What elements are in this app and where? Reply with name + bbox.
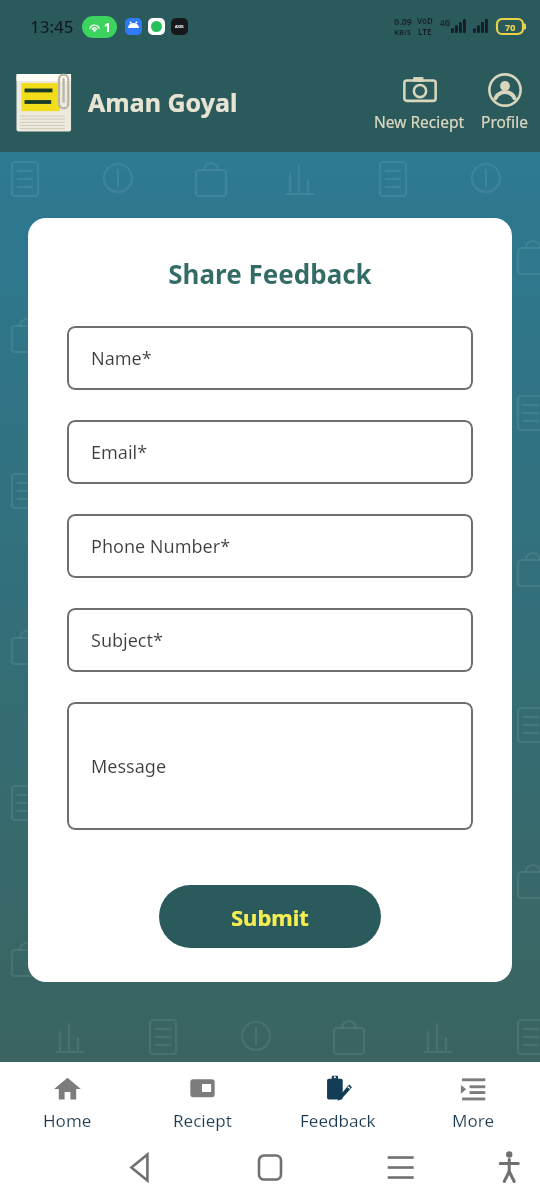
button[interactable]: Reciept [135,1062,270,1144]
staticText: 13:45 [30,15,74,38]
button[interactable]: Name* [67,326,473,390]
staticText: Feedback [300,1109,376,1132]
button[interactable]: More [405,1062,540,1144]
staticText: 1 [104,19,111,35]
staticText: Profile [481,111,528,132]
staticText: Email* [91,440,148,465]
staticText: Message [91,754,167,779]
staticText: Home [43,1109,92,1132]
button[interactable]: Email* [67,420,473,484]
button[interactable]: Feedback [270,1062,405,1144]
staticText: 70 [505,21,516,33]
staticText: Share Feedback [168,256,372,291]
staticText: 0.09 [394,15,412,27]
button[interactable]: Home [0,1062,135,1144]
staticText: 4G [440,17,451,28]
staticText: LTE [418,26,432,37]
staticText: Submit [231,902,309,932]
button[interactable]: Profile [473,69,536,136]
staticText: VoD [417,15,433,26]
staticText: Reciept [173,1109,232,1132]
staticText: New Reciept [374,111,465,132]
staticText: More [452,1109,494,1132]
staticText: Name* [91,346,152,371]
staticText: Aman Goyal [88,85,238,119]
button[interactable]: Message [67,702,473,830]
staticText: Subject* [91,628,163,653]
staticText: AXIS [175,24,184,29]
button[interactable]: Subject* [67,608,473,672]
button[interactable]: Phone Number* [67,514,473,578]
staticText: Phone Number* [91,534,231,559]
staticText: KB/S [394,27,412,37]
button[interactable]: Submit [159,885,381,948]
button[interactable]: New Reciept [366,69,473,136]
